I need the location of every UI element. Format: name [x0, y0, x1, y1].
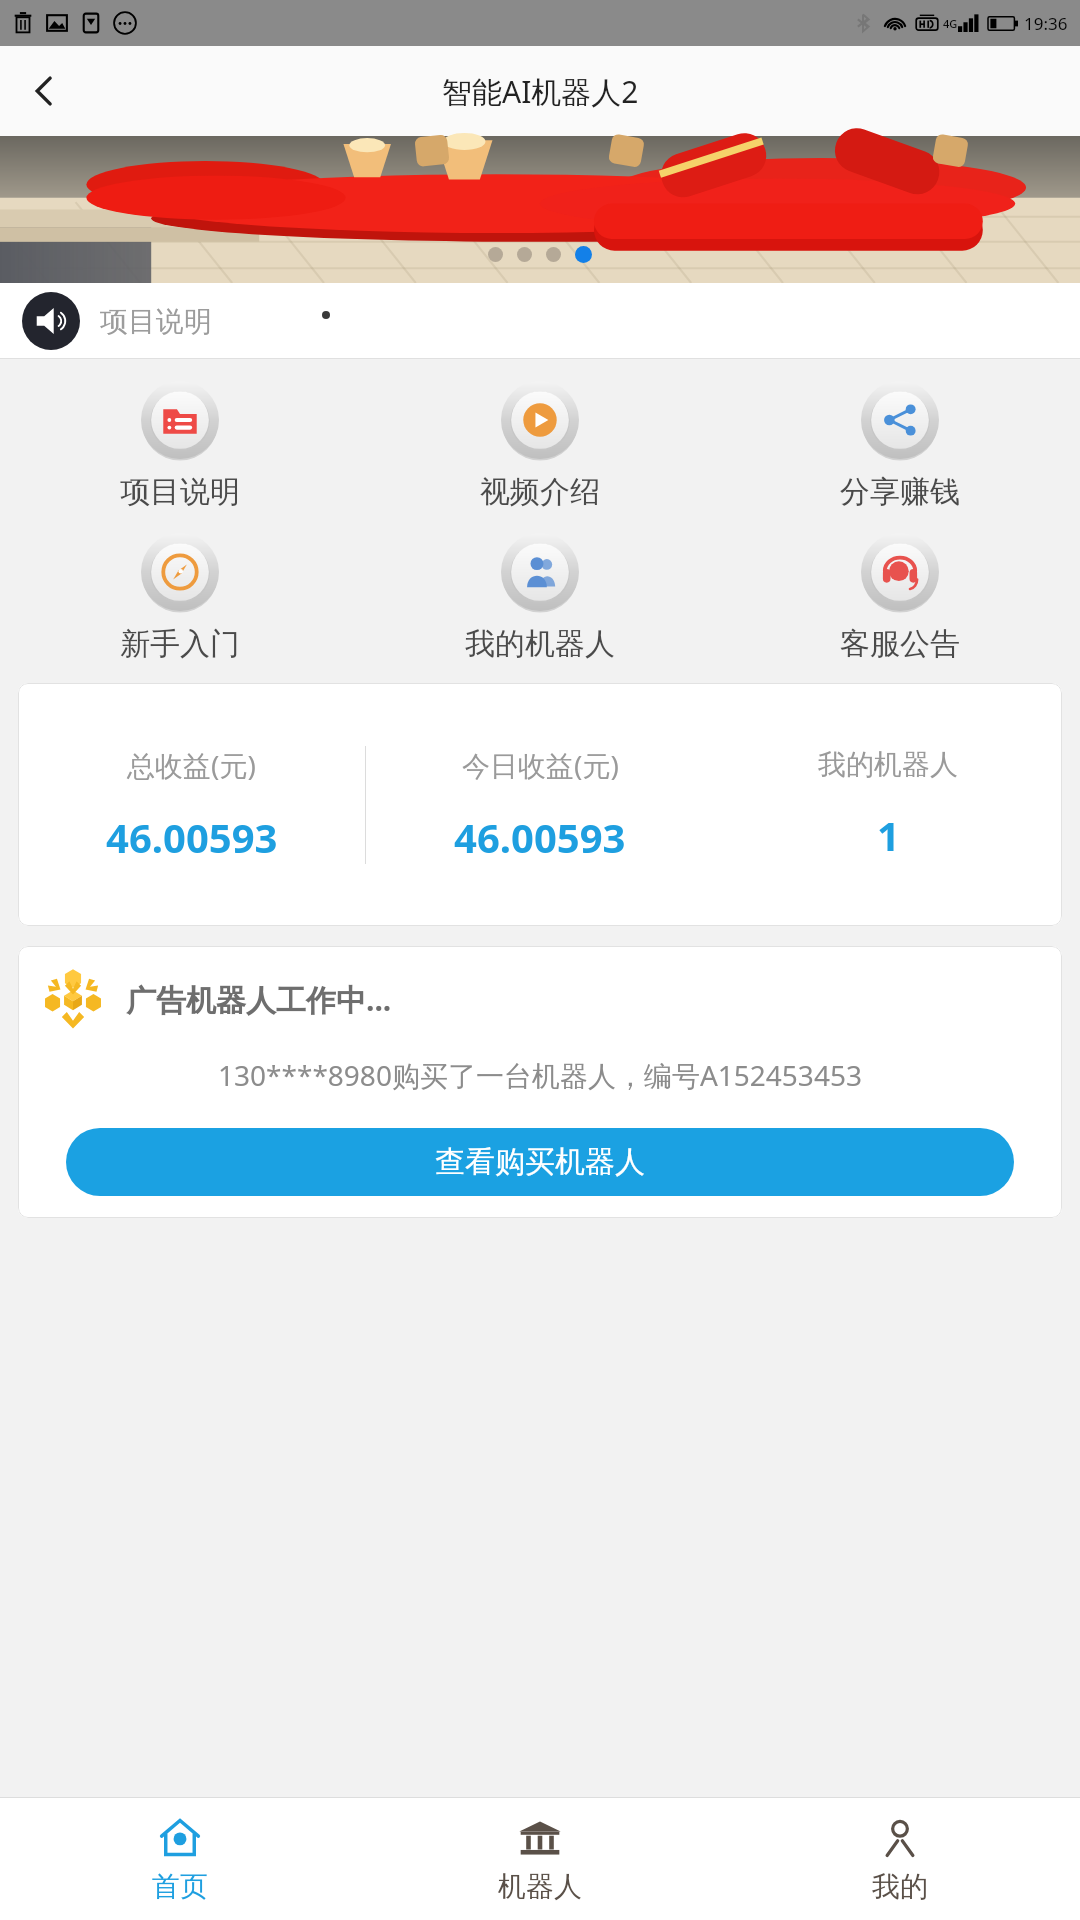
staticText: 今日收益(元): [462, 746, 619, 784]
button[interactable]: 我的机器人: [714, 683, 1062, 926]
staticText: 1: [877, 808, 900, 862]
staticText: 我的机器人: [465, 625, 615, 663]
button[interactable]: 项目说明: [0, 381, 360, 511]
staticText: 首页: [152, 1869, 208, 1904]
staticText: 查看购买机器人: [435, 1143, 645, 1181]
staticText: 客服公告: [840, 625, 960, 663]
staticText: 机器人: [498, 1869, 582, 1904]
button[interactable]: 查看购买机器人: [66, 1128, 1014, 1196]
button[interactable]: 首页: [0, 1798, 360, 1920]
button[interactable]: 我的: [720, 1798, 1080, 1920]
button[interactable]: 今日收益(元): [366, 683, 714, 926]
staticText: 130****8980购买了一台机器人，编号A152453453: [42, 1056, 1038, 1094]
button[interactable]: 新手入门: [0, 533, 360, 663]
button[interactable]: 机器人: [360, 1798, 720, 1920]
staticText: 46.00593: [454, 810, 626, 864]
button[interactable]: 分享赚钱: [720, 381, 1080, 511]
staticText: 46.00593: [106, 810, 278, 864]
staticText: 广告机器人工作中...: [126, 979, 392, 1020]
staticText: 项目说明: [120, 473, 240, 511]
staticText: 我的机器人: [818, 747, 958, 782]
staticText: 分享赚钱: [840, 473, 960, 511]
staticText: 19:36: [1024, 12, 1068, 35]
staticText: 视频介绍: [480, 473, 600, 511]
button[interactable]: 我的机器人: [360, 533, 720, 663]
button[interactable]: 总收益(元): [18, 683, 365, 926]
button[interactable]: Back: [12, 59, 76, 123]
staticText: 新手入门: [120, 625, 240, 663]
staticText: 总收益(元): [127, 746, 256, 784]
button[interactable]: 客服公告: [720, 533, 1080, 663]
staticText: 4G: [943, 16, 958, 31]
button[interactable]: 项目说明: [0, 283, 1080, 358]
staticText: 项目说明: [100, 304, 212, 339]
button[interactable]: 视频介绍: [360, 381, 720, 511]
staticText: 我的: [872, 1869, 928, 1904]
staticText: 智能AI机器人2: [442, 71, 639, 112]
